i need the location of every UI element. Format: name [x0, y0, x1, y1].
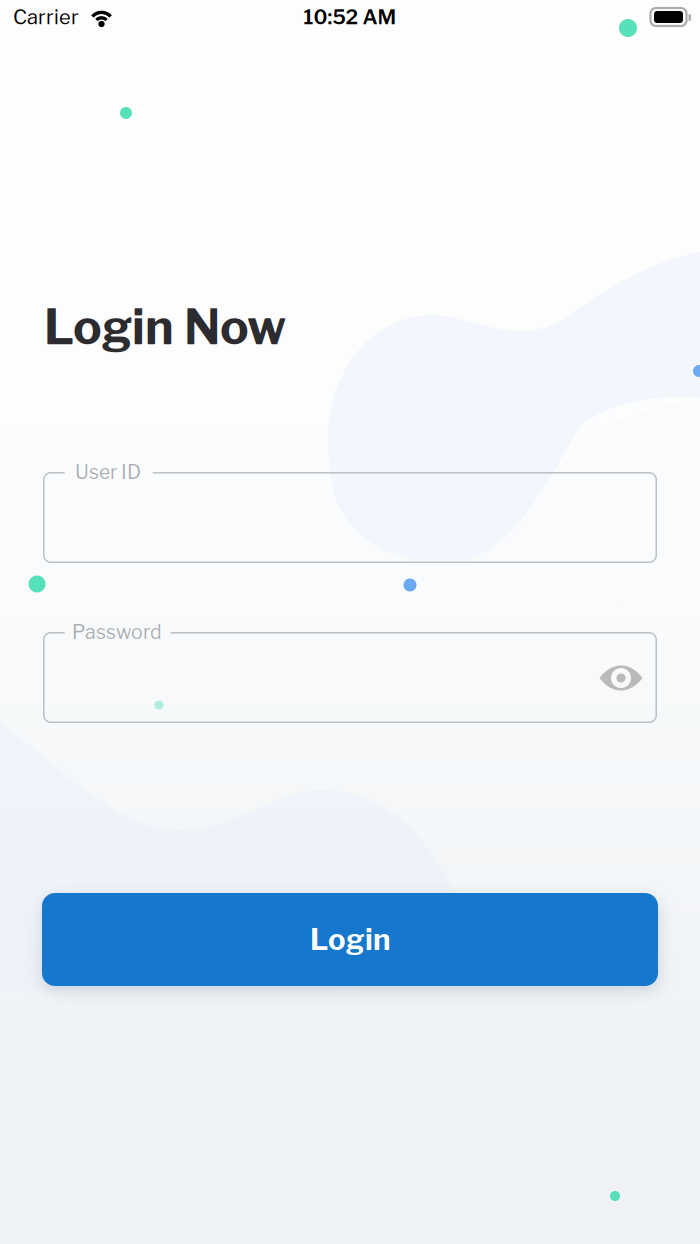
staticText: 10:52 AM: [303, 5, 396, 29]
button[interactable]: Password: [43, 632, 657, 723]
button[interactable]: User ID: [43, 472, 657, 563]
staticText: Login Now: [44, 298, 286, 356]
button[interactable]: Login: [42, 893, 658, 986]
staticText: Carrier: [13, 5, 79, 29]
staticText: User ID: [75, 460, 141, 484]
staticText: Login: [310, 922, 390, 957]
staticText: Password: [72, 620, 162, 644]
